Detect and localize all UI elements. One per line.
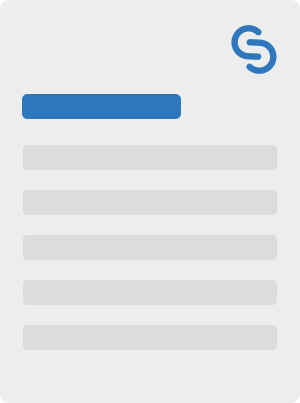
button[interactable]: Scuttle: [232, 25, 278, 75]
